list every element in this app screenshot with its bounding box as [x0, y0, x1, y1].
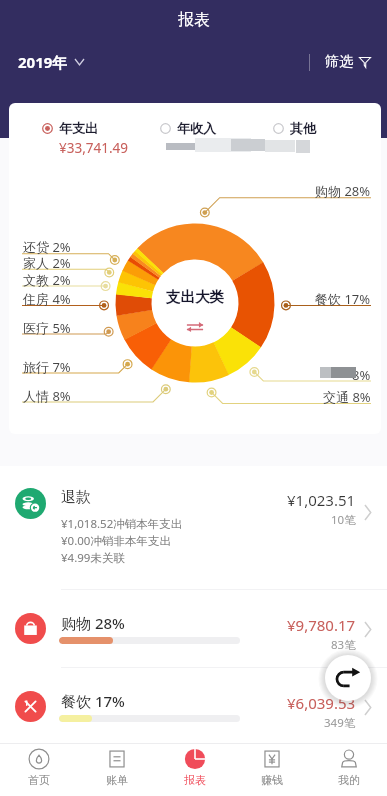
staticText: 349笔 — [324, 715, 356, 731]
button[interactable]: 账单 — [78, 744, 156, 787]
button[interactable]: 我的 — [310, 744, 387, 787]
button[interactable]: 报表 — [156, 744, 233, 787]
button[interactable]: Redo — [325, 655, 371, 701]
button[interactable]: 年支出 — [42, 120, 98, 136]
staticText: 还贷 2% — [23, 238, 71, 256]
staticText: 我的 — [338, 773, 360, 787]
staticText: 筛选 — [325, 53, 353, 71]
staticText: 人情 8% — [23, 387, 71, 405]
staticText: 首页 — [28, 773, 50, 787]
staticText: ¥1,023.51 — [287, 490, 356, 510]
button[interactable]: 首页 — [0, 744, 78, 787]
staticText: 交通 8% — [323, 388, 371, 406]
staticText: 餐饮 17% — [315, 290, 371, 308]
button[interactable]: 购物 28% — [0, 590, 387, 668]
staticText: 文教 2% — [23, 271, 71, 289]
staticText: 2019年 — [18, 52, 68, 72]
staticText: ¥1,018.52冲销本年支出 — [61, 516, 183, 532]
staticText: 10笔 — [331, 512, 356, 528]
staticText: 报表 — [184, 773, 206, 787]
staticText: 购物 28% — [61, 613, 125, 633]
staticText: 其他 — [290, 120, 316, 136]
staticText: 8% — [352, 366, 371, 384]
staticText: 餐饮 17% — [61, 691, 125, 711]
staticText: 退款 — [61, 488, 91, 507]
staticText: 83笔 — [331, 637, 356, 653]
button[interactable]: 赚钱 — [233, 744, 310, 787]
staticText: ¥4.99未关联 — [61, 550, 125, 566]
staticText: ¥6,039.53 — [287, 693, 356, 713]
button[interactable]: 其他 — [273, 120, 316, 136]
staticText: 住房 4% — [23, 290, 71, 308]
button[interactable]: 筛选 — [325, 53, 371, 71]
staticText: 赚钱 — [261, 773, 283, 787]
staticText: 账单 — [106, 773, 128, 787]
button[interactable]: 退款 — [0, 466, 387, 589]
button[interactable]: 2019年 — [18, 52, 84, 72]
staticText: 年支出 — [59, 120, 98, 136]
staticText: 报表 — [178, 10, 210, 30]
button[interactable]: 年收入 — [160, 120, 216, 136]
staticText: 医疗 5% — [23, 319, 71, 337]
staticText: 支出大类 — [166, 288, 224, 306]
button[interactable]: 餐饮 17% — [0, 668, 387, 746]
staticText: ¥33,741.49 — [59, 139, 129, 157]
staticText: ¥9,780.17 — [287, 615, 356, 635]
staticText: 购物 28% — [315, 182, 371, 200]
staticText: 年收入 — [177, 120, 216, 136]
staticText: ¥0.00冲销非本年支出 — [61, 533, 171, 549]
staticText: 旅行 7% — [23, 358, 71, 376]
staticText: 家人 2% — [23, 254, 71, 272]
